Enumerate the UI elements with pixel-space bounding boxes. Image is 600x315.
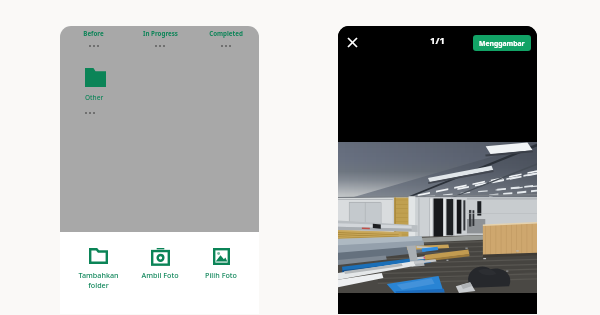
staticText: Other <box>85 93 104 102</box>
staticText: Ambil Foto <box>141 270 179 280</box>
button[interactable]: Pilih Foto <box>191 247 251 280</box>
staticText: Tambahkan folder <box>78 270 119 290</box>
staticText: Pilih Foto <box>205 270 237 280</box>
button[interactable]: Completed <box>193 27 259 39</box>
button[interactable]: Ambil Foto <box>130 247 190 280</box>
button[interactable]: Tambahkan folder <box>68 247 128 290</box>
staticText: Before <box>83 29 104 37</box>
button[interactable]: Close <box>340 30 364 54</box>
staticText: 1/1 <box>430 34 445 47</box>
staticText: Completed <box>209 29 243 37</box>
button[interactable]: Menggambar <box>473 35 531 51</box>
staticText: In Progress <box>143 29 178 37</box>
button[interactable]: In Progress <box>127 27 193 39</box>
button[interactable]: Before <box>60 27 127 39</box>
staticText: Menggambar <box>479 39 525 48</box>
